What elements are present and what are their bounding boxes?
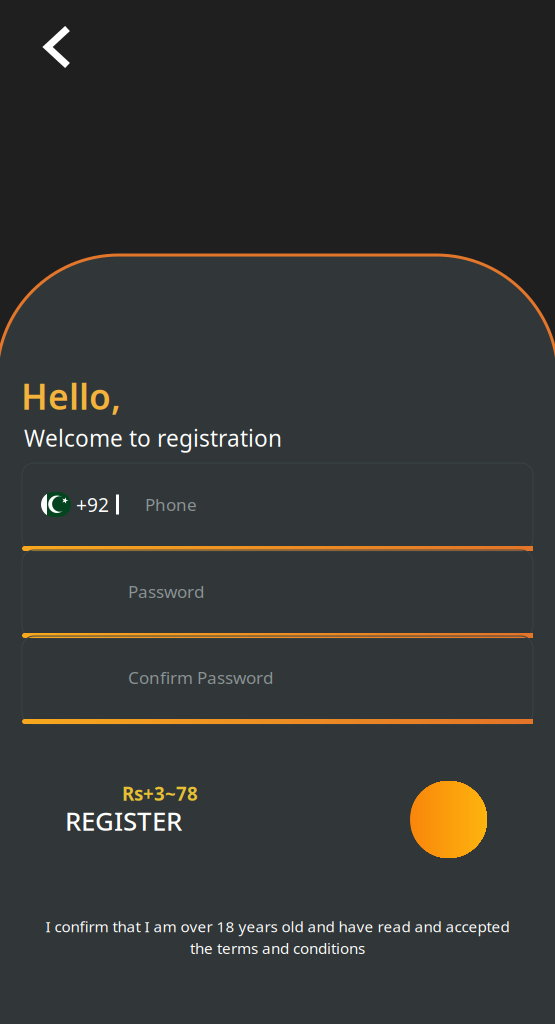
staticText: I confirm that I am over 18 years old an…	[45, 916, 509, 937]
staticText: REGISTER	[65, 803, 182, 838]
staticText: Rs+3~78	[122, 781, 198, 806]
staticText: Password	[128, 580, 204, 603]
staticText: the terms and conditions	[190, 938, 365, 958]
button[interactable]: Back	[30, 0, 92, 92]
staticText: Welcome to registration	[24, 423, 282, 453]
staticText: Hello,	[21, 372, 121, 420]
button[interactable]: Continue	[410, 781, 487, 858]
button[interactable]: Confirm Password	[128, 636, 533, 719]
staticText: Confirm Password	[128, 666, 273, 689]
staticText: +92	[76, 491, 109, 518]
button[interactable]: Password	[128, 550, 533, 633]
button[interactable]: Rs+3~78	[65, 779, 255, 839]
staticText: Phone	[145, 493, 197, 516]
button[interactable]: +92	[41, 463, 533, 546]
